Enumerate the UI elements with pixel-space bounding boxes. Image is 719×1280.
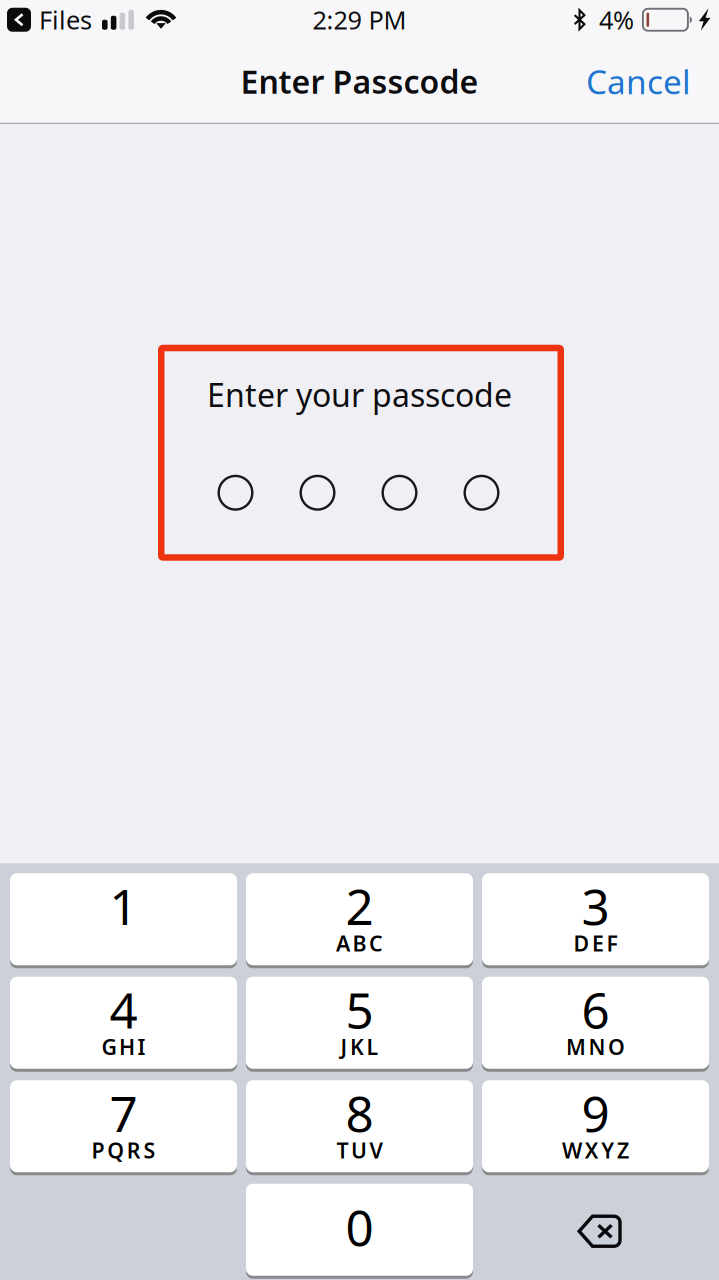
staticText: GHI xyxy=(101,1033,146,1061)
staticText: 9 xyxy=(581,1080,609,1145)
staticText: ABC xyxy=(336,929,383,957)
button[interactable]: 6 xyxy=(482,977,709,1072)
button[interactable]: 3 xyxy=(482,873,709,968)
button[interactable]: Files xyxy=(7,3,92,36)
button[interactable]: 1 xyxy=(10,873,237,968)
button[interactable]: 9 xyxy=(482,1080,709,1175)
staticText: 3 xyxy=(581,873,609,938)
button[interactable]: Delete xyxy=(482,1184,709,1279)
staticText: 5 xyxy=(345,976,373,1042)
staticText: PQRS xyxy=(92,1136,155,1164)
staticText: WXYZ xyxy=(562,1136,629,1164)
staticText: 6 xyxy=(581,976,609,1042)
button[interactable]: 2 xyxy=(246,873,473,968)
button[interactable]: Cancel xyxy=(570,47,707,115)
button[interactable]: 7 xyxy=(10,1080,237,1175)
staticText: MNO xyxy=(566,1033,625,1061)
staticText: 7 xyxy=(109,1080,137,1145)
staticText: 2:29 PM xyxy=(312,3,406,36)
staticText: 8 xyxy=(345,1080,373,1145)
button[interactable]: 0 xyxy=(246,1184,473,1279)
button[interactable]: 8 xyxy=(246,1080,473,1175)
staticText: 1 xyxy=(109,873,137,938)
staticText: 2 xyxy=(345,873,373,938)
staticText: 4% xyxy=(599,3,634,36)
staticText: DEF xyxy=(573,929,618,957)
button[interactable]: 5 xyxy=(246,977,473,1072)
staticText: Enter your passcode xyxy=(207,373,512,416)
staticText: JKL xyxy=(340,1033,379,1061)
staticText: 0 xyxy=(345,1194,373,1259)
staticText: Cancel xyxy=(586,59,691,103)
staticText: 4 xyxy=(109,976,137,1042)
staticText: Enter Passcode xyxy=(240,60,478,102)
staticText: Files xyxy=(39,3,92,36)
button[interactable]: 4 xyxy=(10,977,237,1072)
staticText: TUV xyxy=(336,1136,383,1164)
